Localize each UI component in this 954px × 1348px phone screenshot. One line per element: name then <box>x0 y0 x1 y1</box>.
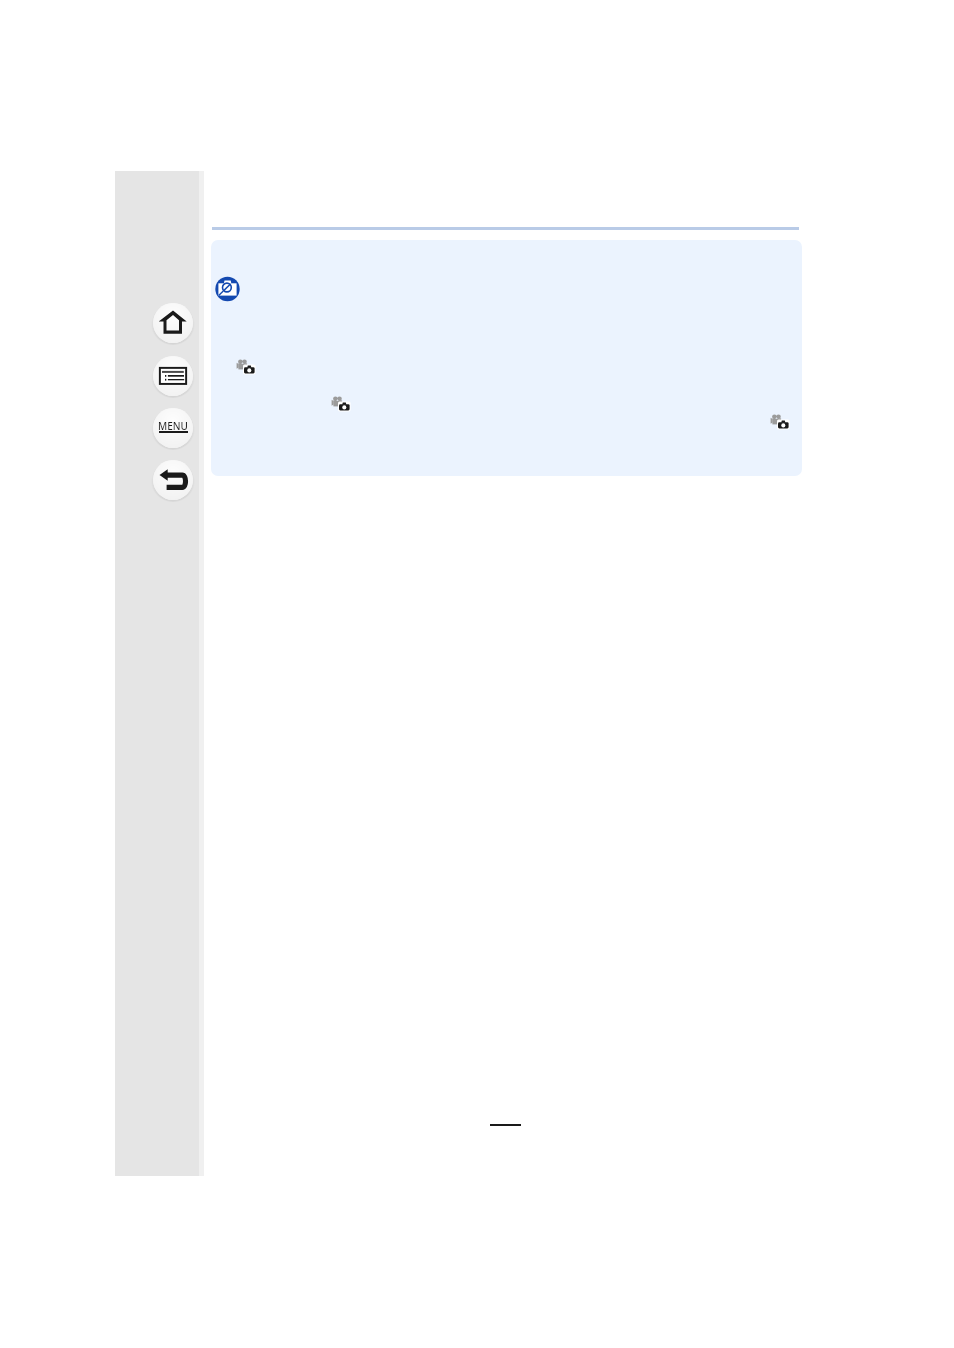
button[interactable]: Back <box>151 458 195 502</box>
button[interactable]: Menu <box>151 406 195 450</box>
staticText: MENU <box>158 419 188 433</box>
button[interactable]: Table of contents <box>151 354 195 398</box>
button[interactable]: Home <box>151 301 195 345</box>
